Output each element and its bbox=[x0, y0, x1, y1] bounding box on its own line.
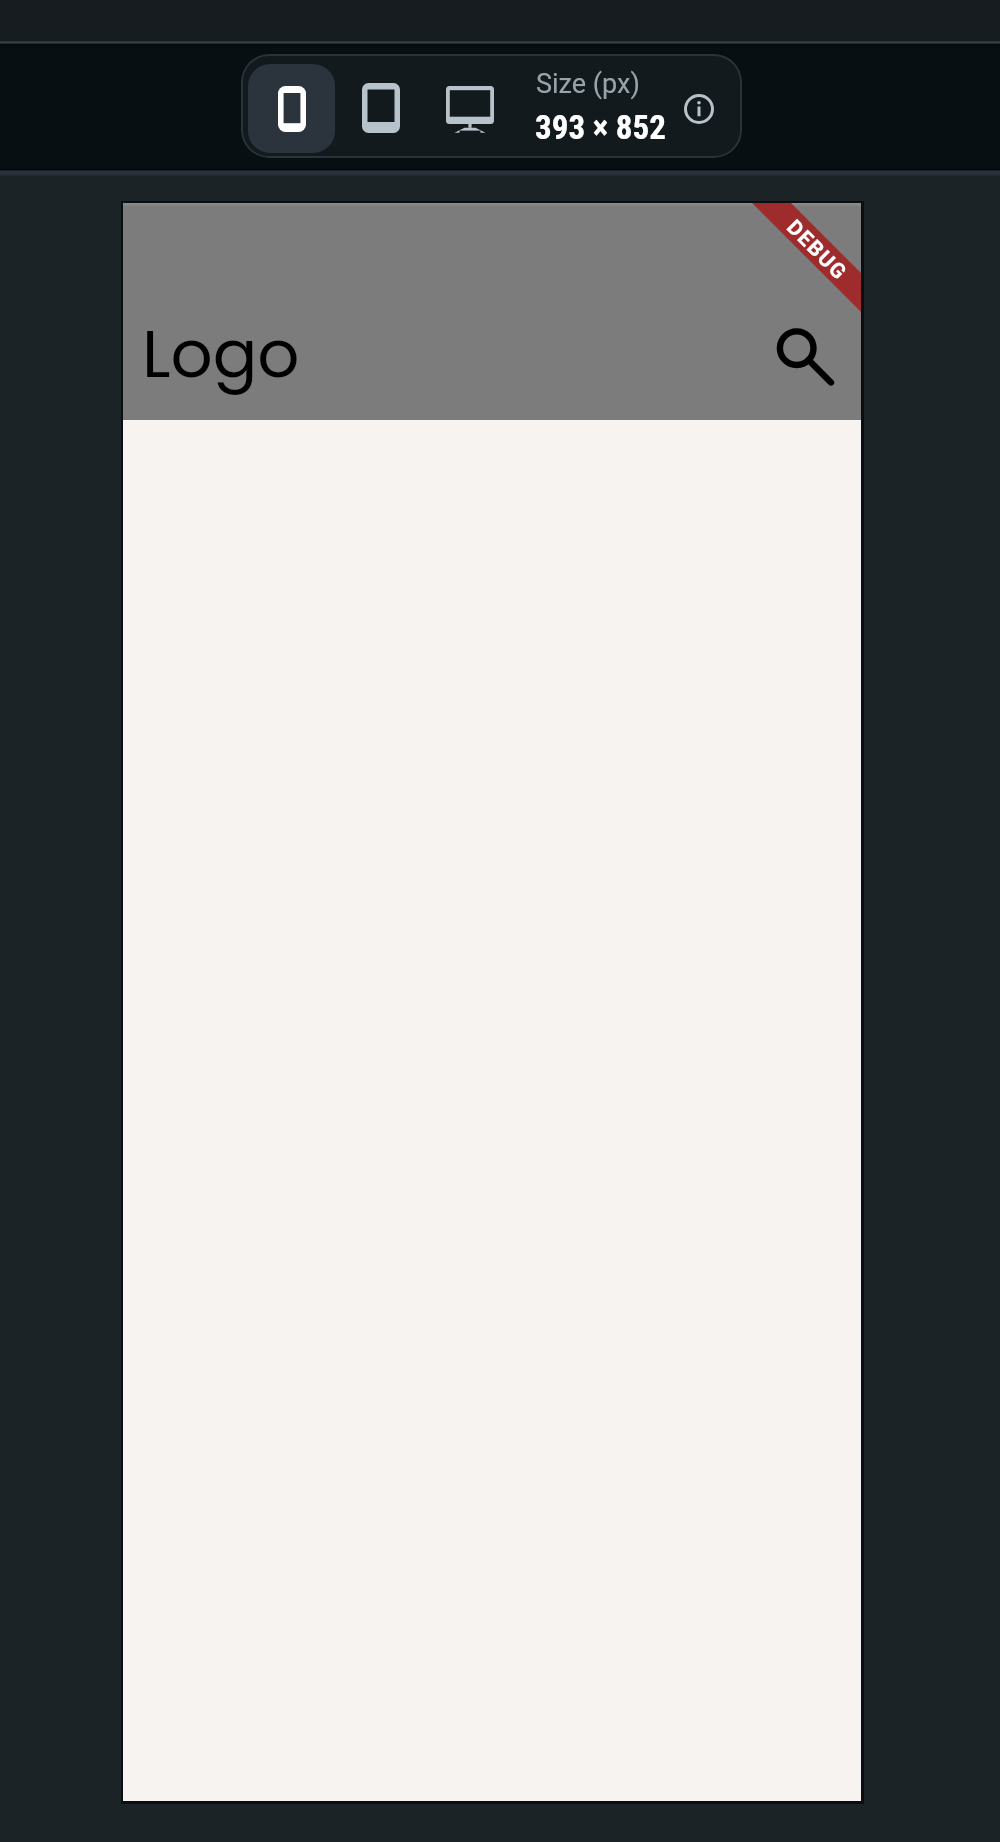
button[interactable]: Search bbox=[750, 303, 846, 399]
staticText: DEBUG bbox=[781, 215, 852, 286]
button[interactable]: Info bbox=[677, 87, 721, 131]
staticText: Logo bbox=[142, 308, 300, 400]
button[interactable]: Tablet size bbox=[342, 63, 420, 152]
button[interactable]: Phone size bbox=[248, 64, 335, 153]
staticText: Size (px) bbox=[536, 68, 640, 100]
button[interactable]: Desktop size bbox=[432, 65, 508, 154]
staticText: 393 × 852 bbox=[535, 108, 666, 147]
